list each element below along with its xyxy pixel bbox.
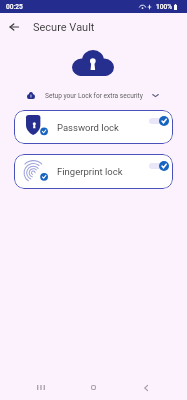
button[interactable]: Toggle: [149, 161, 169, 171]
button[interactable]: Fingerprint lock: [14, 154, 173, 189]
button[interactable]: Setup your Lock for extra security: [27, 87, 159, 104]
staticText: 00:25: [6, 3, 23, 11]
staticText: Secure Vault: [33, 21, 95, 34]
button[interactable]: Password lock: [14, 110, 173, 144]
staticText: Fingerprint lock: [57, 166, 123, 177]
button[interactable]: Home: [83, 377, 103, 397]
button[interactable]: Back: [4, 17, 24, 37]
staticText: 100%: [156, 3, 173, 11]
button[interactable]: Recents: [31, 377, 51, 397]
staticText: Password lock: [57, 122, 119, 133]
button[interactable]: Back: [136, 378, 156, 398]
button[interactable]: Toggle: [149, 116, 169, 126]
staticText: Setup your Lock for extra security: [45, 92, 143, 100]
